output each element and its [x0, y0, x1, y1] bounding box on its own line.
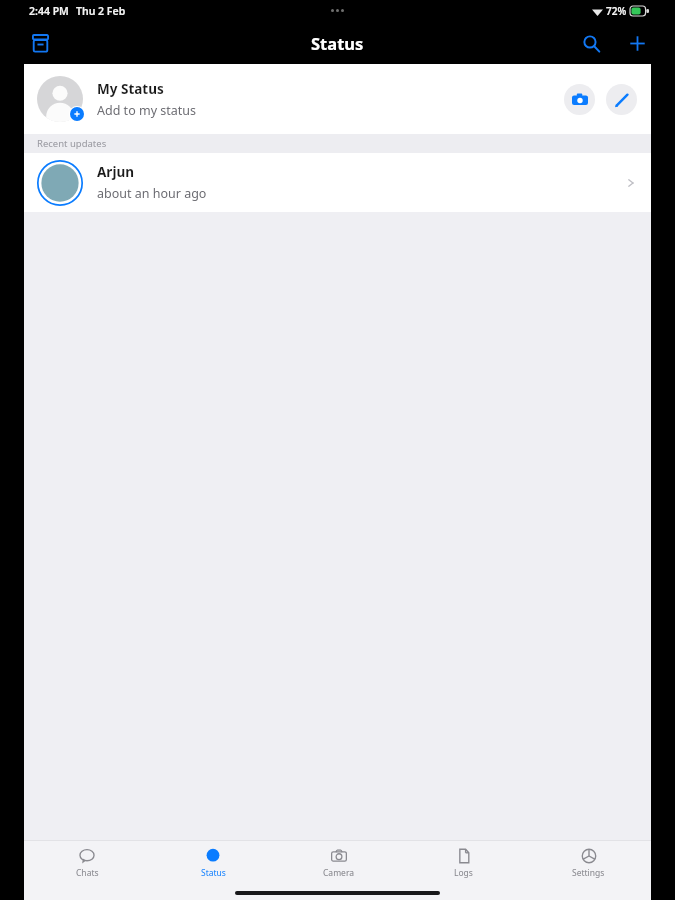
button[interactable]: Chats	[24, 841, 150, 886]
staticText: Status	[311, 32, 364, 54]
staticText: Logs	[454, 867, 473, 879]
staticText: Arjun	[97, 163, 134, 181]
button[interactable]: New status	[621, 27, 653, 59]
staticText: Recent updates	[37, 137, 107, 150]
staticText: 2:44 PM	[29, 4, 69, 18]
staticText: Camera	[323, 867, 354, 879]
button[interactable]: Settings	[526, 841, 651, 886]
staticText: Chats	[76, 867, 99, 879]
button[interactable]: Camera	[276, 841, 401, 886]
button[interactable]: My Status	[24, 64, 651, 134]
button[interactable]: Logs	[401, 841, 526, 886]
staticText: My Status	[97, 80, 164, 98]
button[interactable]: Text status	[606, 84, 637, 115]
button[interactable]: Status	[150, 841, 276, 886]
staticText: about an hour ago	[97, 185, 207, 202]
button[interactable]: Arjun	[24, 153, 651, 212]
button[interactable]: Archived	[22, 25, 58, 61]
button[interactable]: Search	[575, 27, 607, 59]
staticText: Add to my status	[97, 102, 196, 119]
staticText: 72%	[606, 4, 627, 18]
staticText: Settings	[572, 867, 605, 879]
button[interactable]: Camera status	[564, 84, 595, 115]
staticText: Status	[201, 867, 226, 879]
staticText: Thu 2 Feb	[76, 4, 126, 18]
